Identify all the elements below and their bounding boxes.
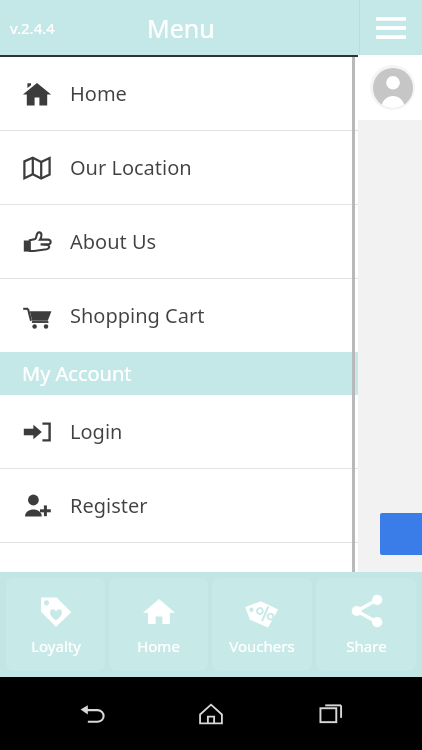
staticText: Menu [147, 11, 215, 45]
button[interactable]: Vouchers [212, 578, 312, 671]
button[interactable]: Recent apps [303, 686, 359, 742]
staticText: Home [70, 80, 127, 107]
button[interactable]: Home [183, 686, 239, 742]
button[interactable]: Home [109, 578, 208, 671]
staticText: About Us [70, 228, 157, 255]
staticText: Our Location [70, 154, 192, 181]
button[interactable]: Open navigation menu [360, 0, 422, 55]
staticText: Register [70, 492, 148, 519]
button[interactable]: Shopping Cart [0, 279, 358, 352]
button[interactable]: Register [0, 469, 358, 542]
button[interactable] [380, 513, 422, 555]
staticText: Home [137, 636, 180, 656]
staticText: v.2.4.4 [10, 18, 55, 38]
staticText: Shopping Cart [70, 302, 205, 329]
button[interactable]: Loyalty [6, 578, 105, 671]
button[interactable]: Our Location [0, 131, 358, 204]
staticText: Loyalty [31, 636, 81, 656]
button[interactable]: About Us [0, 205, 358, 278]
button[interactable]: Login [0, 395, 358, 468]
staticText: Share [346, 636, 387, 656]
button[interactable]: Back [64, 686, 120, 742]
button[interactable]: Home [0, 57, 358, 130]
button[interactable]: Share [316, 578, 416, 671]
staticText: Vouchers [229, 636, 295, 656]
staticText: My Account [22, 360, 132, 387]
staticText: Login [70, 418, 123, 445]
